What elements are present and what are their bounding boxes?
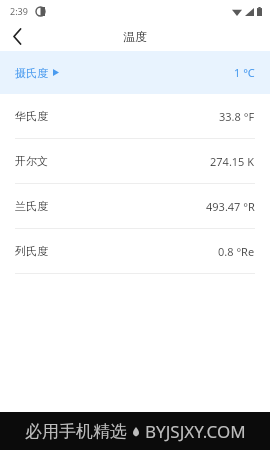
staticText: 274.15 K: [210, 154, 255, 169]
button[interactable]: 列氏度: [0, 229, 270, 273]
button[interactable]: 开尔文: [0, 139, 270, 183]
button[interactable]: Back: [0, 22, 34, 51]
staticText: 兰氏度: [15, 199, 48, 213]
staticText: 摄氏度: [15, 66, 48, 80]
staticText: 493.47 °R: [206, 199, 255, 214]
staticText: 温度: [123, 29, 147, 44]
button[interactable]: 摄氏度: [0, 51, 270, 94]
staticText: 开尔文: [15, 154, 48, 168]
staticText: 华氏度: [15, 109, 48, 123]
button[interactable]: 兰氏度: [0, 184, 270, 228]
staticText: 2:39: [10, 5, 28, 17]
staticText: 33.8 °F: [219, 109, 255, 124]
staticText: 列氏度: [15, 244, 48, 258]
staticText: 必用手机精选: [25, 421, 127, 442]
staticText: 0.8 °Re: [218, 244, 255, 259]
staticText: BYJSJXY.COM: [145, 420, 246, 443]
staticText: 1 °C: [234, 65, 255, 80]
button[interactable]: 华氏度: [0, 94, 270, 138]
